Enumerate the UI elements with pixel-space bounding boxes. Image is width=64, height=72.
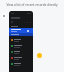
button[interactable] [9,55,33,61]
button[interactable] [9,43,33,49]
button[interactable] [9,61,33,67]
button[interactable] [9,49,33,55]
button[interactable] [9,37,33,43]
button[interactable]: Play video [1,13,7,19]
staticText: View a list of recent records directly [6,3,58,7]
